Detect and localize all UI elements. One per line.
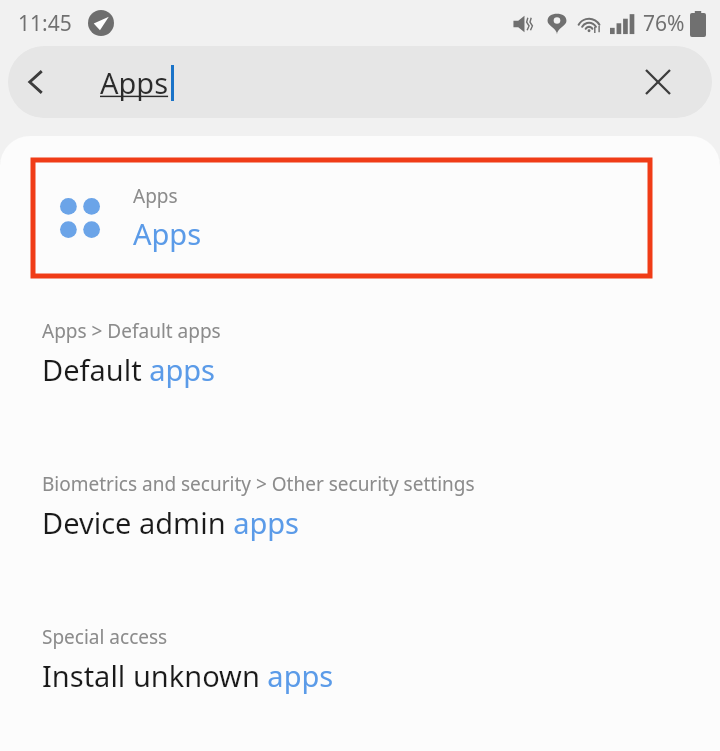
button[interactable]: Apps > Default apps bbox=[0, 312, 720, 395]
button[interactable]: Clear search bbox=[632, 56, 684, 108]
staticText: Install unknown apps bbox=[42, 656, 334, 695]
staticText: Special access bbox=[42, 624, 168, 650]
staticText: Default apps bbox=[42, 350, 216, 389]
staticText: Biometrics and security > Other security… bbox=[42, 471, 475, 497]
button[interactable]: Special access bbox=[0, 618, 720, 701]
button[interactable]: Biometrics and security > Other security… bbox=[0, 465, 720, 548]
staticText: Apps > Default apps bbox=[42, 318, 221, 344]
staticText: Device admin apps bbox=[42, 503, 299, 542]
button[interactable]: Back bbox=[8, 54, 64, 110]
staticText: 11:45 bbox=[18, 9, 72, 38]
button[interactable]: Apps bbox=[31, 158, 652, 278]
staticText: Apps bbox=[100, 63, 169, 102]
staticText: Apps bbox=[133, 214, 202, 253]
staticText: Apps bbox=[133, 183, 178, 209]
staticText: 76% bbox=[643, 9, 685, 38]
